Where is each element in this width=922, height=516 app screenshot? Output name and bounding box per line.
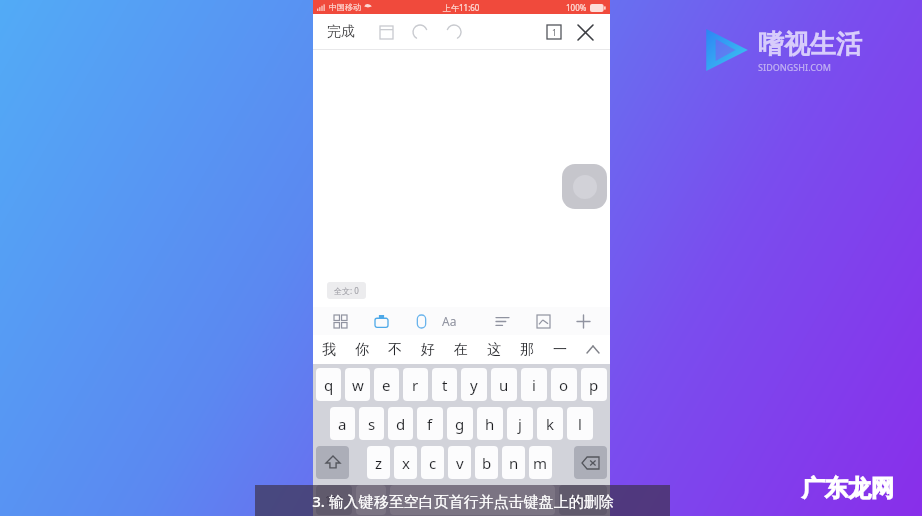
staticText: 在 [454,341,468,359]
button[interactable]: Pages [542,20,566,44]
button[interactable]: 我 [313,335,345,364]
staticText: h [485,414,495,434]
staticText: q [324,375,334,395]
button[interactable]: Grid [327,308,353,334]
button[interactable]: n [502,446,525,479]
button[interactable]: c [421,446,444,479]
button[interactable]: w [345,368,370,401]
button[interactable]: 全文: 0 [327,282,366,299]
button[interactable]: l [567,407,593,440]
staticText: 3. 输入键移至空白页首行并点击键盘上的删除 [312,491,614,511]
button[interactable]: Insert [570,308,596,334]
staticText: i [532,375,536,395]
button[interactable]: Expand suggestions [576,335,610,364]
button[interactable]: t [432,368,457,401]
staticText: n [509,453,519,473]
staticText: y [470,375,478,395]
staticText: f [427,414,433,434]
staticText: SIDONGSHI.COM [758,61,832,73]
staticText: 中国移动 [329,2,361,12]
button[interactable]: d [388,407,413,440]
staticText: r [412,375,419,395]
staticText: w [352,375,364,395]
button[interactable]: z [367,446,390,479]
button[interactable]: k [537,407,563,440]
staticText: 1 [552,27,557,38]
button[interactable]: a [330,407,355,440]
staticText: 换行 [573,494,593,507]
staticText: 广东龙网 [802,474,894,503]
button[interactable]: q [316,368,341,401]
button[interactable]: 不 [378,335,411,364]
button[interactable]: Delete [574,446,607,479]
button[interactable]: h [477,407,503,440]
button[interactable]: f [417,407,443,440]
staticText: k [546,414,555,434]
button[interactable]: Undo [409,21,431,43]
staticText: 不 [388,341,402,359]
staticText: 100% [566,2,587,13]
staticText: 我 [322,341,336,359]
staticText: v [456,453,464,473]
button[interactable]: Space [390,485,555,515]
button[interactable]: s [359,407,384,440]
button[interactable]: 那 [510,335,543,364]
button[interactable]: 你 [345,335,378,364]
staticText: p [589,375,599,395]
button[interactable]: p [581,368,607,401]
button[interactable]: b [475,446,498,479]
staticText: 你 [355,341,369,359]
button[interactable]: Shape [408,308,434,334]
staticText: t [442,375,448,395]
button[interactable]: x [394,446,417,479]
staticText: Aa [442,313,457,329]
staticText: j [518,414,522,434]
button[interactable]: 这 [477,335,510,364]
staticText: o [559,375,569,395]
button[interactable]: m [529,446,552,479]
button[interactable]: 在 [444,335,477,364]
staticText: d [396,414,406,434]
staticText: x [402,453,410,473]
button[interactable]: 完成 [325,19,357,45]
button[interactable]: u [491,368,517,401]
button[interactable]: Clipboard [368,308,394,334]
button[interactable]: 换行 [559,485,607,515]
button[interactable]: e [374,368,399,401]
button[interactable]: y [461,368,487,401]
button[interactable]: Redo [443,21,465,43]
button[interactable]: Image [530,308,556,334]
staticText: 全文: 0 [334,285,359,296]
staticText: c [429,453,437,473]
button[interactable]: Font [449,308,475,334]
staticText: e [382,375,391,395]
staticText: a [338,414,347,434]
button[interactable]: 好 [411,335,444,364]
button[interactable]: i [521,368,547,401]
button[interactable]: 一 [543,335,576,364]
staticText: 那 [520,341,534,359]
button[interactable]: g [447,407,473,440]
staticText: b [482,453,492,473]
staticText: s [368,414,376,434]
button[interactable]: Align [489,308,515,334]
button[interactable]: Save [375,21,397,43]
staticText: z [375,453,383,473]
button[interactable]: Close [572,19,598,45]
button[interactable]: r [403,368,428,401]
staticText: g [455,414,465,434]
button[interactable]: Shift [316,446,349,479]
staticText: 完成 [327,23,355,41]
staticText: 嗜视生活 [758,28,862,61]
staticText: l [578,414,582,434]
staticText: 这 [487,341,501,359]
staticText: 一 [553,341,567,359]
staticText: 上午11:60 [443,2,480,13]
button[interactable]: Emoji [356,485,386,515]
button[interactable]: 123 [316,485,352,515]
button[interactable]: o [551,368,577,401]
button[interactable]: Handwriting input [562,164,607,209]
button[interactable]: j [507,407,533,440]
staticText: 好 [421,341,435,359]
button[interactable]: v [448,446,471,479]
